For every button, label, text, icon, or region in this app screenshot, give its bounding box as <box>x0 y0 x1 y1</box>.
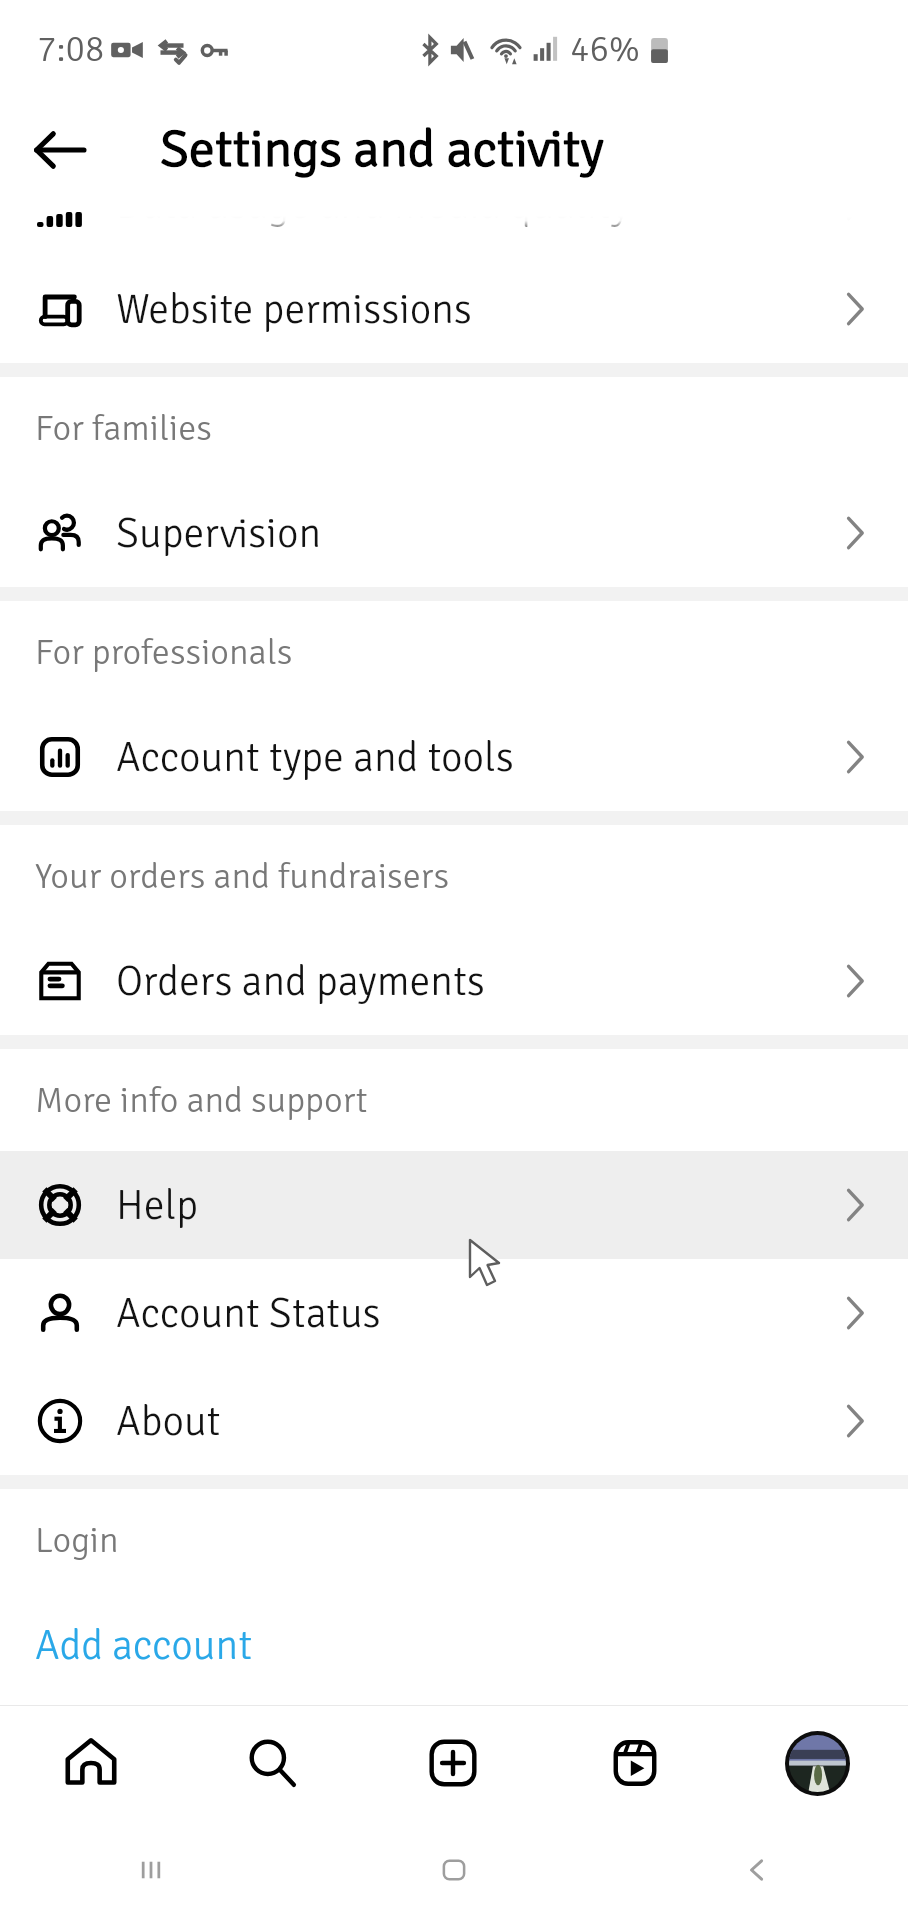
button[interactable]: Search <box>181 1706 362 1820</box>
staticText: Help <box>116 1180 199 1231</box>
button[interactable]: Supervision <box>0 479 908 587</box>
button[interactable]: Recents <box>0 1820 302 1920</box>
button[interactable]: Back <box>605 1820 908 1920</box>
staticText: Settings and activity <box>160 117 604 181</box>
button[interactable]: Website permissions <box>0 255 908 363</box>
button[interactable]: Orders and payments <box>0 927 908 1035</box>
button[interactable]: Home <box>0 1706 181 1820</box>
staticText: For families <box>35 406 212 450</box>
button[interactable]: Back <box>12 102 108 198</box>
button[interactable]: Account Status <box>0 1259 908 1367</box>
staticText: Supervision <box>116 508 322 559</box>
button[interactable]: Create <box>362 1706 544 1820</box>
button[interactable]: Profile <box>726 1706 908 1820</box>
staticText: Add account <box>35 1620 253 1671</box>
button[interactable]: Reels <box>544 1706 726 1820</box>
button[interactable]: Account type and tools <box>0 703 908 811</box>
button[interactable]: Add account <box>0 1591 908 1699</box>
staticText: 7:08 <box>37 27 105 71</box>
staticText: Account type and tools <box>116 732 514 783</box>
button[interactable]: Help <box>0 1151 908 1259</box>
staticText: Data usage and media quality <box>116 200 630 230</box>
button[interactable]: About <box>0 1367 908 1475</box>
staticText: For professionals <box>35 630 293 674</box>
staticText: Your orders and fundraisers <box>35 854 450 898</box>
staticText: More info and support <box>35 1078 368 1122</box>
staticText: 46% <box>570 27 640 71</box>
staticText: Login <box>35 1518 119 1562</box>
staticText: Orders and payments <box>116 956 485 1007</box>
staticText: Website permissions <box>116 284 472 335</box>
staticText: About <box>116 1396 221 1447</box>
staticText: Account Status <box>116 1288 381 1339</box>
button[interactable]: Home <box>302 1820 605 1920</box>
